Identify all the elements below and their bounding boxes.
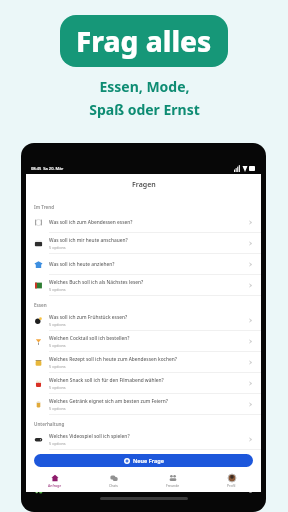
staticText: Welches Buch soll ich als Nächstes lesen… xyxy=(49,279,144,286)
staticText: Neue Frage xyxy=(133,457,164,464)
button[interactable]: Welches Getränk eignet sich am besten zu… xyxy=(26,394,261,415)
button[interactable]: Was soll ich heute anziehen? xyxy=(26,254,261,275)
staticText: Im Trend xyxy=(34,204,55,210)
staticText: Unterhaltung xyxy=(34,421,65,427)
button[interactable]: Welche Musik soll ich beim Training höre… xyxy=(26,450,261,471)
staticText: 5 options xyxy=(49,322,66,327)
staticText: Frag alles xyxy=(76,22,212,60)
button[interactable]: Profil xyxy=(202,470,261,492)
staticText: 5 options xyxy=(49,483,66,488)
button[interactable]: Was soll ich zum Abendessen essen? xyxy=(26,212,261,233)
button[interactable]: Welchen Snack soll ich für den Filmabend… xyxy=(26,373,261,394)
staticText: Chats xyxy=(109,483,118,488)
button[interactable]: Welches Rätsel soll ich ausprobieren? xyxy=(26,471,261,492)
staticText: 5 options xyxy=(49,245,66,250)
staticText: 5 options xyxy=(49,406,66,411)
staticText: Was soll ich mir heute anschauen? xyxy=(49,237,128,244)
staticText: Was soll ich zum Abendessen essen? xyxy=(49,219,133,226)
button[interactable]: Welches Videospiel soll ich spielen? xyxy=(26,429,261,450)
staticText: Essen, Mode, xyxy=(99,77,190,96)
staticText: Welches Getränk eignet sich am besten zu… xyxy=(49,398,168,405)
staticText: 5 options xyxy=(49,343,66,348)
staticText: Profil xyxy=(227,483,236,488)
staticText: Was soll ich zum Frühstück essen? xyxy=(49,314,128,321)
staticText: 08:45 Sa 20. Mär xyxy=(31,166,64,171)
staticText: Welches Rezept soll ich heute zum Abende… xyxy=(49,356,177,363)
button[interactable]: Welchen Cocktail soll ich bestellen? xyxy=(26,331,261,352)
staticText: Was soll ich heute anziehen? xyxy=(49,261,115,268)
staticText: Fragen xyxy=(132,180,156,190)
button[interactable]: Chats xyxy=(84,470,143,492)
staticText: Welchen Cocktail soll ich bestellen? xyxy=(49,335,130,342)
staticText: Essen xyxy=(34,302,47,308)
button[interactable]: Welches Buch soll ich als Nächstes lesen… xyxy=(26,275,261,296)
button[interactable]: Welches Rezept soll ich heute zum Abende… xyxy=(26,352,261,373)
staticText: Welche Musik soll ich beim Training höre… xyxy=(49,454,148,461)
staticText: 5 options xyxy=(49,441,66,446)
staticText: Welches Videospiel soll ich spielen? xyxy=(49,433,130,440)
staticText: 5 options xyxy=(49,287,66,292)
staticText: Spaß oder Ernst xyxy=(89,100,200,119)
button[interactable]: Was soll ich zum Frühstück essen? xyxy=(26,310,261,331)
staticText: 5 options xyxy=(49,385,66,390)
staticText: Anfrage xyxy=(48,483,62,488)
button[interactable]: Anfrage xyxy=(26,470,84,492)
staticText: Freunde xyxy=(166,483,180,488)
button[interactable]: Freunde xyxy=(143,470,202,492)
button[interactable]: Was soll ich mir heute anschauen? xyxy=(26,233,261,254)
staticText: 5 options xyxy=(49,364,66,369)
button[interactable]: Neue Frage xyxy=(34,454,253,467)
button[interactable]: Frag alles xyxy=(60,15,228,67)
staticText: Welchen Snack soll ich für den Filmabend… xyxy=(49,377,164,384)
staticText: Welches Rätsel soll ich ausprobieren? xyxy=(49,475,135,482)
